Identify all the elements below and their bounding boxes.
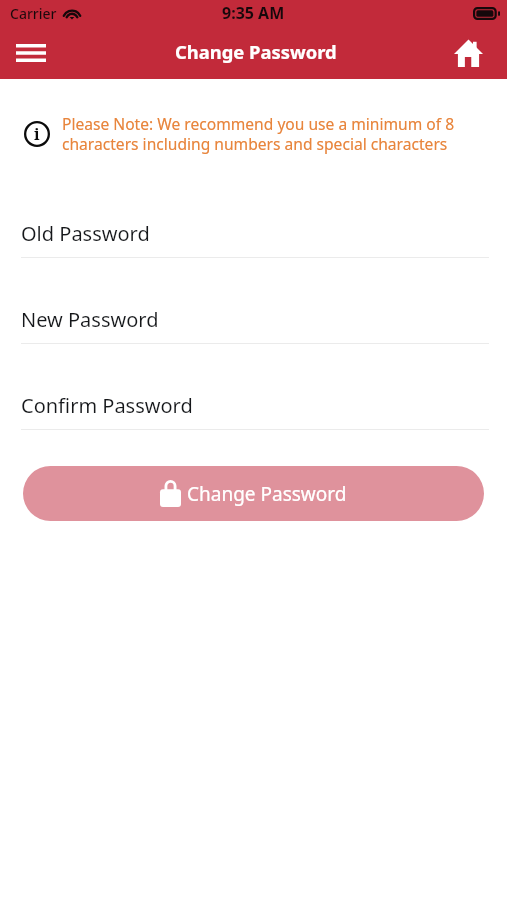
button[interactable]: Change Password — [23, 466, 484, 521]
button[interactable]: Home — [454, 38, 483, 67]
staticText: Change Password — [175, 39, 337, 64]
button[interactable]: Confirm Password — [21, 392, 489, 430]
staticText: Change Password — [187, 481, 347, 507]
staticText: i — [34, 123, 40, 145]
staticText: Confirm Password — [21, 392, 193, 419]
button[interactable]: Menu — [4, 32, 58, 74]
button[interactable]: Old Password — [21, 220, 489, 258]
staticText: Carrier — [10, 4, 57, 23]
staticText: 9:35 AM — [222, 2, 285, 24]
button[interactable]: New Password — [21, 306, 489, 344]
staticText: Old Password — [21, 220, 150, 247]
staticText: New Password — [21, 306, 159, 333]
staticText: Please Note: We recommend you use a mini… — [62, 113, 466, 154]
